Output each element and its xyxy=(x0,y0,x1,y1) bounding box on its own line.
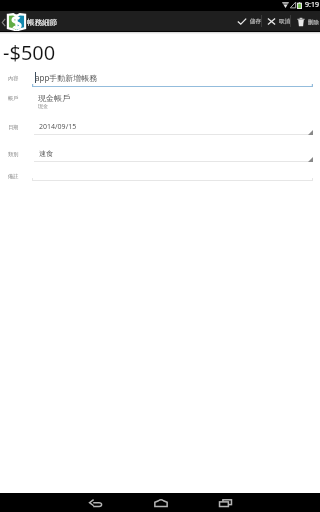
button[interactable]: 帳戶 xyxy=(0,90,320,112)
button[interactable]: 取消 xyxy=(263,17,292,26)
staticText: 速食 xyxy=(39,149,53,158)
staticText: 類別 xyxy=(8,151,19,158)
staticText: 2014/09/15 xyxy=(39,122,77,132)
button[interactable]: Navigate up xyxy=(0,12,59,32)
button[interactable]: Recent apps xyxy=(193,493,258,512)
button[interactable]: Home xyxy=(128,493,193,512)
button[interactable]: 備註 xyxy=(0,169,320,185)
staticText: app手動新增帳務 xyxy=(35,72,98,83)
staticText: -$500 xyxy=(3,39,56,66)
staticText: 帳務細節 xyxy=(27,18,57,27)
staticText: 9:19 xyxy=(305,0,319,10)
button[interactable]: 儲存 xyxy=(233,17,263,26)
staticText: 備註 xyxy=(8,173,19,180)
staticText: 刪除 xyxy=(308,19,319,26)
button[interactable]: 日期 xyxy=(0,118,320,140)
button[interactable]: 內容 xyxy=(0,68,320,88)
button[interactable]: 類別 xyxy=(0,145,320,167)
staticText: 現金 xyxy=(38,103,48,109)
staticText: 儲存 xyxy=(250,18,261,25)
staticText: 現金帳戶 xyxy=(38,93,70,103)
staticText: 內容 xyxy=(8,75,19,82)
staticText: 帳戶 xyxy=(8,95,19,102)
button[interactable]: 刪除 xyxy=(293,17,320,27)
staticText: 取消 xyxy=(279,18,290,25)
button[interactable]: Back xyxy=(63,493,128,512)
staticText: 日期 xyxy=(8,124,19,131)
other: Navigate up xyxy=(1,18,6,27)
